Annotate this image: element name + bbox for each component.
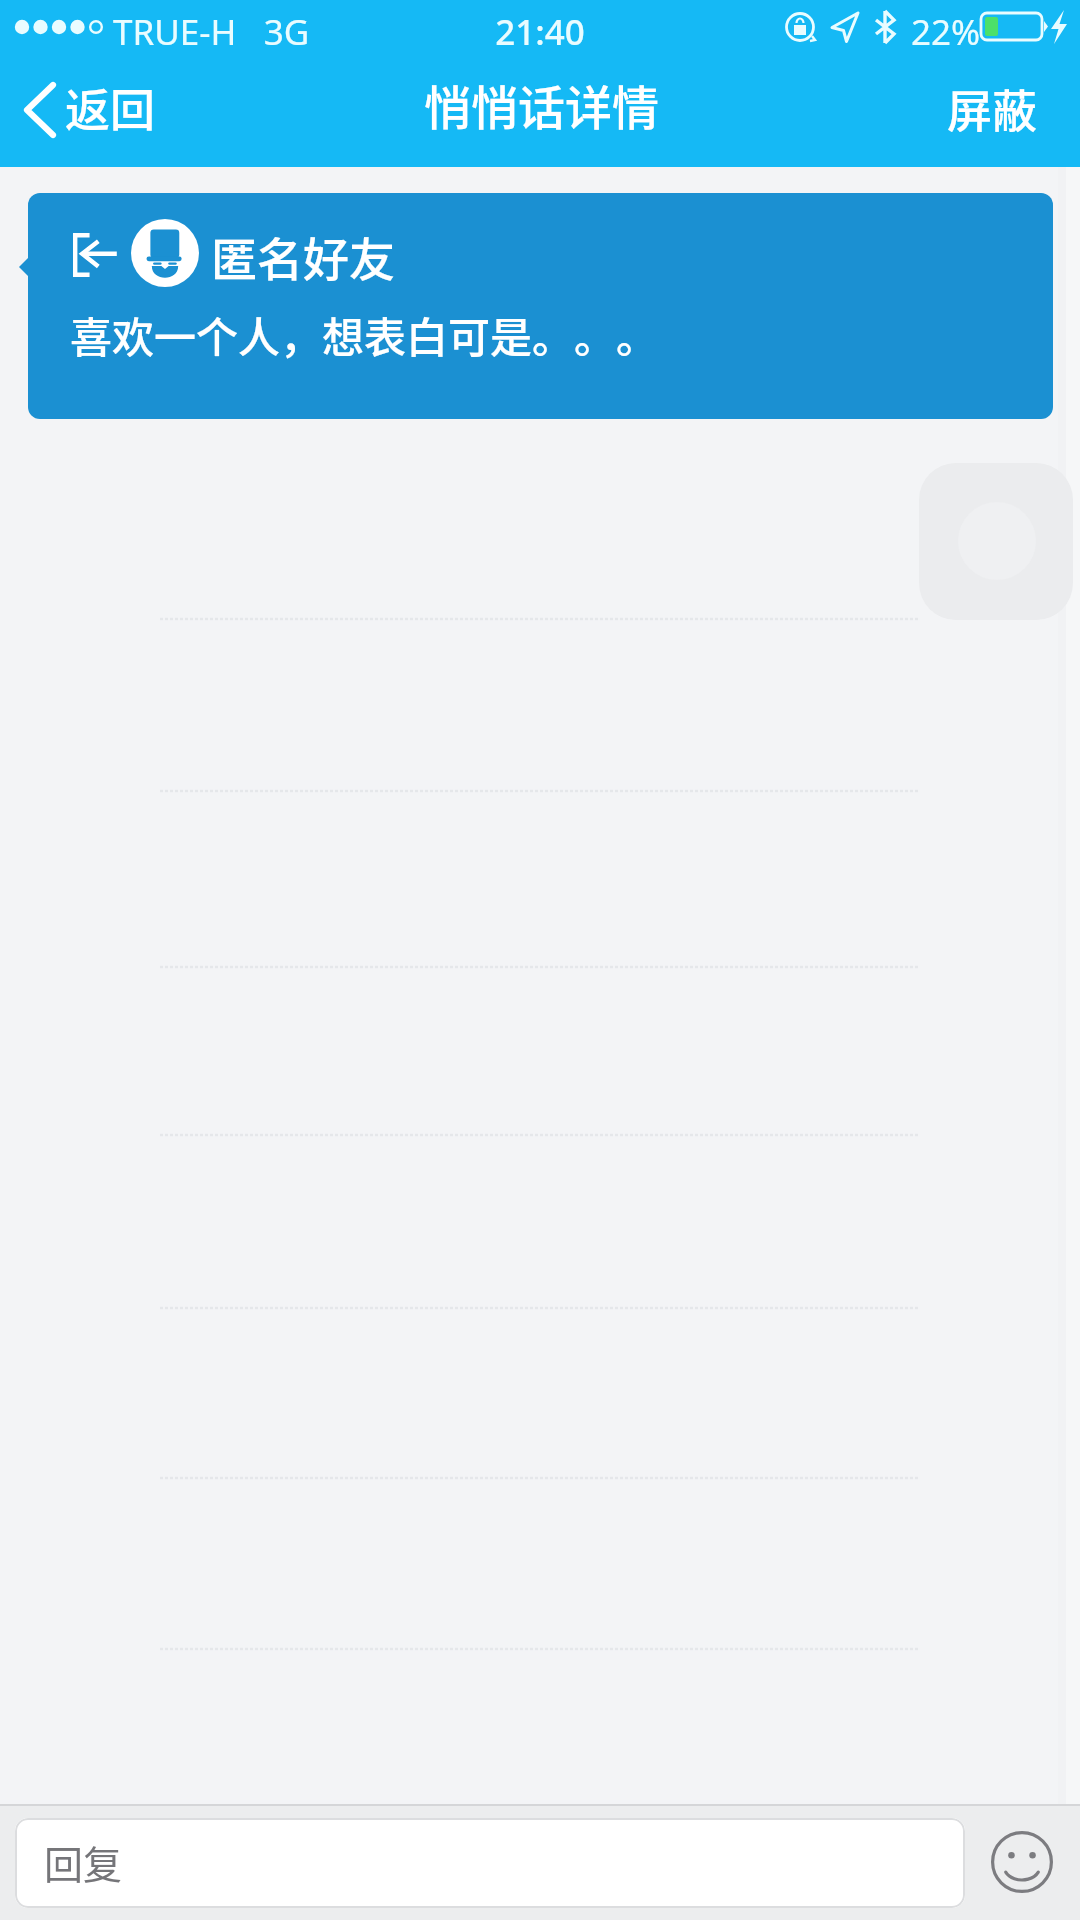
button[interactable]: Emoji keyboard	[991, 1831, 1053, 1893]
staticText: 21:40	[0, 8, 1080, 56]
staticText: 22%	[911, 8, 981, 56]
button[interactable]: 匿名好友	[28, 193, 1053, 419]
staticText: 返回	[65, 75, 156, 140]
staticText: 回复	[44, 1834, 123, 1890]
button[interactable]: 屏蔽	[917, 64, 1080, 153]
button[interactable]: 回复	[15, 1818, 965, 1908]
button[interactable]: 返回	[0, 64, 180, 147]
staticText: 悄悄话详情	[424, 70, 659, 138]
staticText: TRUE-H 3G	[113, 8, 310, 56]
staticText: 喜欢一个人，想表白可是。。。	[70, 304, 659, 365]
staticText: 屏蔽	[947, 76, 1038, 141]
staticText: 匿名好友	[211, 223, 395, 290]
